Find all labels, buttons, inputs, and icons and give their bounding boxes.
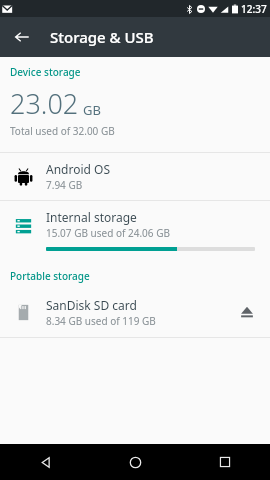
staticText: Portable storage	[10, 269, 90, 283]
staticText: SanDisk SD card	[46, 297, 137, 313]
staticText: 12:37	[241, 2, 267, 16]
staticText: Internal storage	[46, 209, 137, 225]
button[interactable]: SanDisk SD card	[0, 287, 270, 337]
button[interactable]: Internal storage	[0, 201, 270, 259]
button[interactable]: Back	[0, 444, 90, 480]
staticText: 15.07 GB used of 24.06 GB	[46, 226, 170, 240]
staticText: 8.34 GB used of 119 GB	[46, 314, 156, 328]
button[interactable]: Eject SD card	[230, 295, 264, 329]
staticText: GB	[83, 101, 101, 119]
button[interactable]: Home	[90, 444, 180, 480]
staticText: Android OS	[46, 161, 110, 177]
button[interactable]: Android OS	[0, 153, 270, 200]
button[interactable]: Recent apps	[180, 444, 270, 480]
staticText: 23.02	[10, 85, 79, 122]
staticText: 7.94 GB	[46, 178, 83, 192]
staticText: Storage & USB	[50, 27, 154, 47]
button[interactable]: Back	[6, 21, 38, 53]
staticText: Device storage	[10, 65, 81, 79]
staticText: Total used of 32.00 GB	[10, 124, 115, 138]
